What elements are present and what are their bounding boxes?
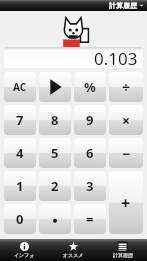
staticText: オススメ bbox=[63, 252, 84, 258]
staticText: 9 bbox=[86, 111, 94, 129]
button[interactable]: Recommended bbox=[49, 239, 98, 261]
button[interactable]: 5 bbox=[39, 138, 71, 168]
button[interactable]: 9 bbox=[74, 105, 106, 135]
staticText: 6 bbox=[86, 144, 94, 162]
button[interactable]: = bbox=[74, 204, 106, 234]
staticText: 1 bbox=[16, 177, 24, 195]
button[interactable]: Info bbox=[0, 239, 49, 261]
button[interactable]: 2 bbox=[39, 171, 71, 201]
staticText: × bbox=[122, 111, 131, 130]
other: Recommended bbox=[69, 242, 78, 251]
button[interactable]: + bbox=[109, 171, 143, 234]
staticText: 5 bbox=[51, 144, 59, 162]
button[interactable]: 計算履歴 bbox=[109, 1, 144, 10]
staticText: 計算履歴 bbox=[109, 1, 137, 10]
staticText: % bbox=[84, 78, 96, 96]
staticText: 2 bbox=[51, 177, 59, 195]
staticText: ÷ bbox=[122, 78, 131, 97]
staticText: = bbox=[86, 210, 94, 228]
button[interactable]: 7 bbox=[4, 105, 36, 135]
staticText: 計算履歴 bbox=[113, 252, 133, 258]
button[interactable]: History bbox=[98, 239, 147, 261]
other: History bbox=[118, 242, 127, 251]
staticText: + bbox=[121, 192, 131, 214]
staticText: 3 bbox=[86, 177, 94, 195]
button[interactable]: AC bbox=[4, 72, 36, 102]
button[interactable]: 8 bbox=[39, 105, 71, 135]
staticText: 4 bbox=[16, 144, 24, 162]
button[interactable]: 3 bbox=[74, 171, 106, 201]
staticText: 8 bbox=[51, 111, 59, 129]
button[interactable]: 0 bbox=[4, 204, 36, 234]
button[interactable]: × bbox=[109, 105, 143, 135]
button[interactable]: 4 bbox=[4, 138, 36, 168]
staticText: AC bbox=[13, 80, 27, 94]
staticText: 0 bbox=[16, 210, 24, 228]
staticText: インフォ bbox=[14, 252, 35, 258]
staticText: 7 bbox=[16, 111, 24, 129]
button[interactable]: Decimal point bbox=[39, 204, 71, 234]
button[interactable]: − bbox=[109, 138, 143, 168]
staticText: − bbox=[122, 144, 131, 163]
staticText: 0.103 bbox=[94, 47, 138, 68]
button[interactable]: 1 bbox=[4, 171, 36, 201]
button[interactable]: 6 bbox=[74, 138, 106, 168]
other: Info bbox=[20, 242, 29, 251]
button[interactable]: ÷ bbox=[109, 72, 143, 102]
button[interactable]: Play bbox=[39, 72, 71, 102]
button[interactable]: % bbox=[74, 72, 106, 102]
